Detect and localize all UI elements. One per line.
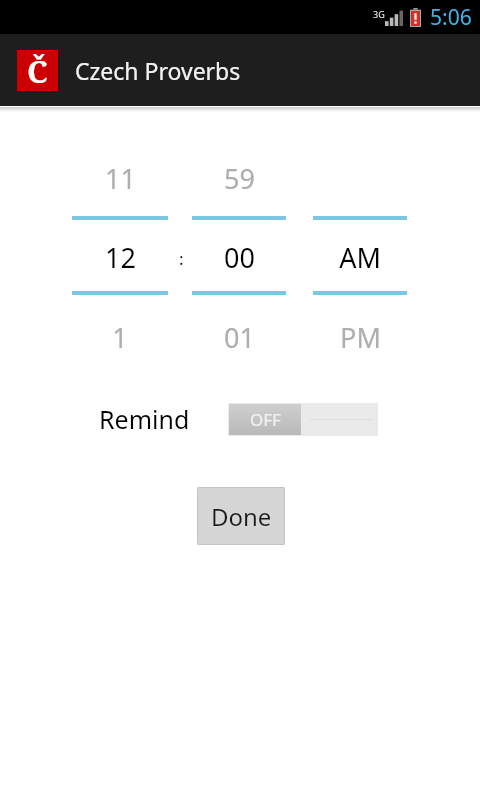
staticText: : xyxy=(179,247,184,270)
button[interactable]: Hour xyxy=(71,112,169,375)
staticText: 5:06 xyxy=(430,3,472,32)
staticText: 59 xyxy=(224,160,255,197)
staticText: 12 xyxy=(105,239,136,276)
button[interactable]: Done xyxy=(197,487,285,545)
staticText: 00 xyxy=(224,239,255,276)
button[interactable]: Minute xyxy=(191,112,287,375)
staticText: Czech Proverbs xyxy=(75,55,241,86)
staticText: 3G xyxy=(373,8,385,20)
staticText: PM xyxy=(340,319,381,356)
staticText: Remind xyxy=(99,402,190,436)
staticText: Done xyxy=(211,500,272,533)
staticText: OFF xyxy=(250,408,281,431)
staticText: 11 xyxy=(105,160,136,197)
button[interactable]: AM PM xyxy=(312,112,408,375)
staticText: 1 xyxy=(112,319,128,356)
staticText: AM xyxy=(339,239,381,276)
staticText: Č xyxy=(27,50,48,91)
staticText: 01 xyxy=(224,319,255,356)
button[interactable]: Remind toggle, off xyxy=(228,403,378,436)
